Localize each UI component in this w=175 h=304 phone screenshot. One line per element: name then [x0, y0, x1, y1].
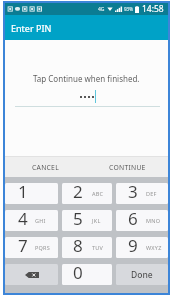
staticText: 1: [18, 183, 28, 201]
staticText: DEF: [146, 190, 157, 197]
button[interactable]: 7: [5, 237, 58, 258]
staticText: Tap Continue when finished.: [33, 73, 140, 84]
staticText: 2: [73, 183, 83, 201]
button[interactable]: CONTINUE: [86, 157, 168, 177]
staticText: TUV: [92, 244, 104, 251]
staticText: PQRS: [35, 244, 51, 251]
staticText: GHI: [35, 217, 46, 224]
button[interactable]: CANCEL: [5, 157, 86, 177]
staticText: 7: [18, 237, 28, 255]
staticText: JKL: [92, 217, 101, 224]
button[interactable]: Done: [116, 264, 168, 285]
staticText: ABC: [92, 190, 104, 197]
staticText: 0: [73, 264, 83, 282]
staticText: WXYZ: [146, 244, 162, 251]
button[interactable]: 8: [62, 237, 112, 258]
staticText: 5: [73, 210, 83, 228]
staticText: CONTINUE: [109, 163, 146, 172]
staticText: 4: [18, 210, 28, 228]
staticText: Enter PIN: [11, 22, 52, 34]
button[interactable]: 2: [62, 183, 112, 204]
button[interactable]: 9: [116, 237, 168, 258]
button[interactable]: 1: [5, 183, 58, 204]
button[interactable]: 5: [62, 210, 112, 231]
staticText: 9: [128, 237, 138, 255]
staticText: Done: [131, 269, 153, 281]
button[interactable]: 4: [5, 210, 58, 231]
button[interactable]: 3: [116, 183, 168, 204]
button[interactable]: Backspace: [5, 264, 58, 285]
staticText: CANCEL: [32, 163, 59, 172]
staticText: 3: [128, 183, 138, 201]
button[interactable]: 6: [116, 210, 168, 231]
staticText: 93%: [124, 6, 133, 12]
staticText: 4G: [98, 6, 105, 13]
staticText: 8: [73, 237, 83, 255]
button[interactable]: 0: [62, 264, 112, 285]
staticText: MNO: [146, 217, 161, 224]
staticText: 6: [128, 210, 138, 228]
staticText: 14:58: [142, 3, 164, 15]
